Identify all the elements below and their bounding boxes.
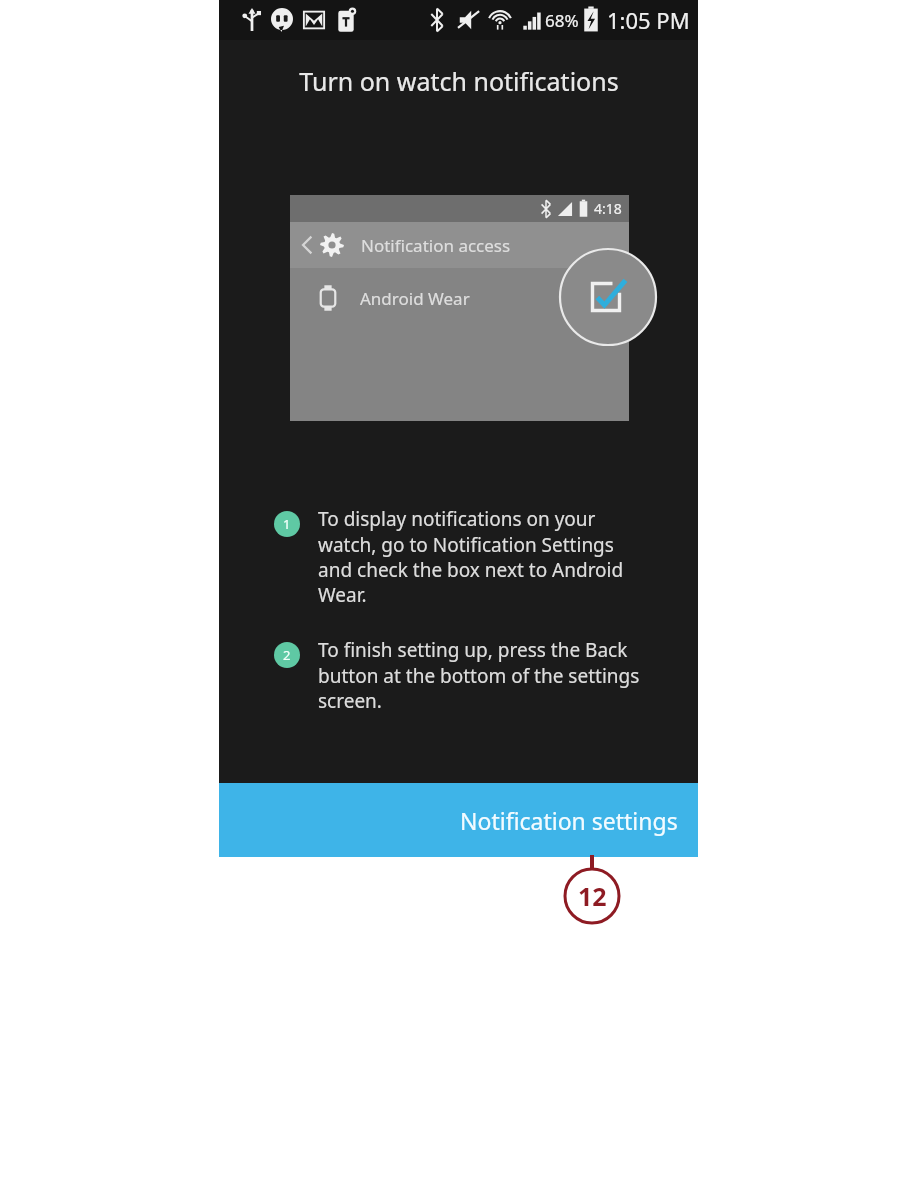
staticText: Notification settings	[460, 805, 678, 836]
staticText: To display notifications on your watch, …	[318, 506, 650, 607]
staticText: Android Wear	[360, 287, 470, 310]
staticText: To finish setting up, press the Back but…	[318, 637, 650, 713]
staticText: 12	[578, 879, 607, 913]
staticText: 1:05 PM	[607, 5, 690, 35]
button[interactable]: Back	[290, 222, 629, 268]
staticText: 1	[283, 515, 291, 533]
staticText: Notification access	[361, 234, 511, 257]
staticText: 4:18	[594, 199, 622, 218]
button[interactable]: Android Wear	[290, 268, 629, 328]
staticText: Turn on watch notifications	[299, 64, 619, 98]
other: Back	[298, 236, 316, 254]
staticText: 2	[283, 646, 291, 664]
button[interactable]: Notification settings	[219, 783, 698, 857]
staticText: 68%	[545, 9, 579, 32]
